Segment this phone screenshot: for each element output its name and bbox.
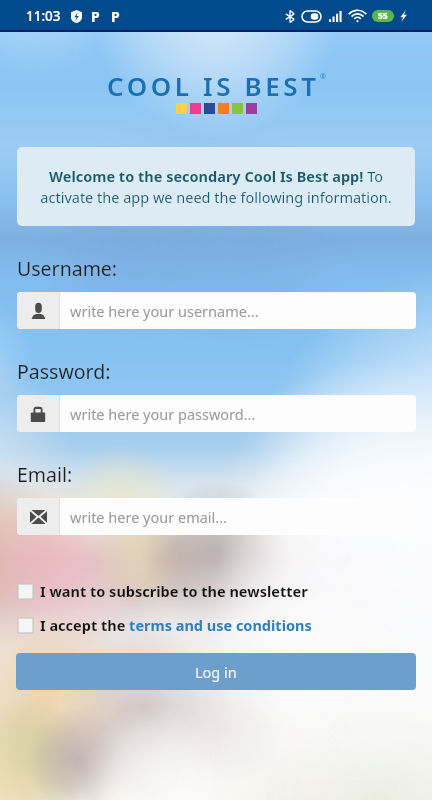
staticText: I accept the terms and use conditions <box>40 615 312 635</box>
button[interactable]: Email <box>17 498 416 535</box>
button[interactable]: Username <box>17 292 416 329</box>
staticText: P <box>91 7 100 26</box>
staticText: write here your password... <box>70 404 256 424</box>
staticText: 11:03 <box>26 7 61 25</box>
other: Username <box>31 302 46 319</box>
staticText: COOL IS BEST <box>107 68 320 103</box>
staticText: Username: <box>17 255 118 282</box>
staticText: I want to subscribe to the newsletter <box>40 581 308 601</box>
button[interactable]: Log in <box>16 653 416 690</box>
button[interactable]: Password <box>17 395 416 432</box>
staticText: ® <box>320 72 326 82</box>
button[interactable]: I accept the terms and use conditions <box>18 615 312 635</box>
staticText: Password: <box>17 358 111 385</box>
other: Password <box>30 406 46 422</box>
staticText: Email: <box>17 461 73 488</box>
button[interactable]: I want to subscribe to the newsletter <box>18 581 308 601</box>
staticText: write here your email... <box>70 507 227 527</box>
staticText: P <box>111 7 120 26</box>
staticText: Welcome to the secondary Cool Is Best ap… <box>33 166 399 208</box>
staticText: write here your username... <box>70 301 259 321</box>
other: Email <box>30 510 47 524</box>
staticText: 55 <box>378 10 388 22</box>
staticText: Log in <box>195 662 237 682</box>
